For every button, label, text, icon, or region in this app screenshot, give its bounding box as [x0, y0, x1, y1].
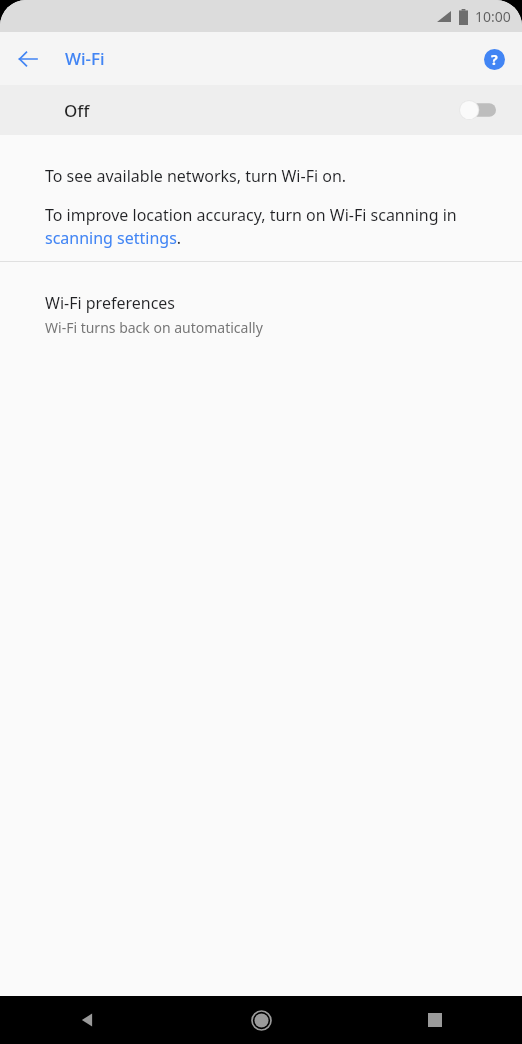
button[interactable]: Help [474, 39, 514, 79]
staticText: 10:00 [475, 7, 511, 26]
staticText: Wi-Fi [65, 47, 105, 70]
button[interactable]: Wi-Fi preferences [0, 262, 522, 353]
button[interactable]: Off [0, 85, 522, 135]
button[interactable]: Back [0, 996, 174, 1044]
staticText: Wi-Fi turns back on automatically [45, 318, 263, 337]
staticText: ? [491, 50, 498, 69]
button[interactable]: Back [8, 39, 48, 79]
staticText: Wi-Fi preferences [45, 292, 176, 314]
button[interactable]: To improve location accuracy, turn on Wi… [45, 204, 502, 249]
button[interactable]: Recent apps [348, 996, 522, 1044]
staticText: Off [64, 99, 90, 122]
staticText: To see available networks, turn Wi-Fi on… [45, 165, 347, 187]
button[interactable]: Home [174, 996, 348, 1044]
